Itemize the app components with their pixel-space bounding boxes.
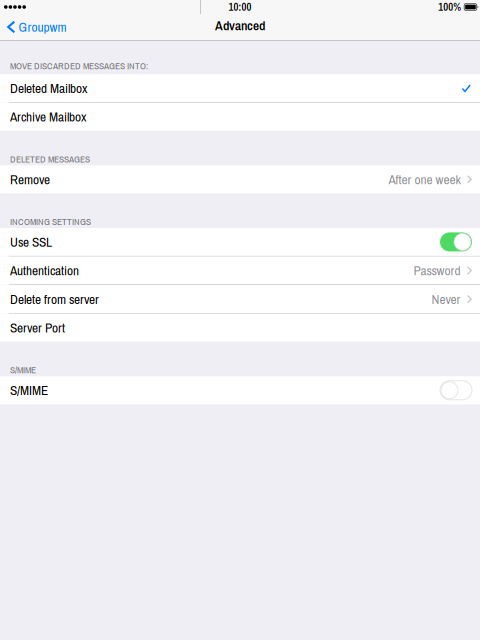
staticText: 10:00 [228, 0, 251, 14]
staticText: 100% [438, 0, 461, 14]
staticText: Delete from server [10, 290, 99, 308]
staticText: Use SSL [10, 233, 52, 251]
staticText: Groupwm [18, 18, 66, 36]
staticText: MOVE DISCARDED MESSAGES INTO: [10, 60, 148, 72]
staticText: S/MIME [10, 381, 48, 399]
button[interactable]: Deleted Mailbox [0, 74, 480, 102]
staticText: S/MIME [10, 364, 36, 376]
staticText: Archive Mailbox [10, 108, 86, 126]
staticText: Server Port [10, 319, 65, 337]
staticText: Authentication [10, 261, 79, 279]
button[interactable]: Server Port [0, 314, 480, 342]
button[interactable]: Authentication [0, 256, 480, 284]
button[interactable]: Use SSL [0, 228, 480, 256]
staticText: Deleted Mailbox [10, 79, 87, 97]
button[interactable]: Delete from server [0, 285, 480, 313]
staticText: Remove [10, 170, 50, 188]
staticText: Password [414, 261, 461, 279]
button[interactable]: S/MIME [0, 376, 480, 404]
staticText: Advanced [215, 16, 265, 34]
button[interactable]: Archive Mailbox [0, 103, 480, 131]
button[interactable]: Groupwm [0, 14, 72, 40]
staticText: Never [432, 290, 461, 308]
staticText: After one week [389, 170, 461, 188]
staticText: INCOMING SETTINGS [10, 215, 91, 228]
staticText: DELETED MESSAGES [10, 153, 90, 165]
button[interactable]: Remove [0, 165, 480, 193]
